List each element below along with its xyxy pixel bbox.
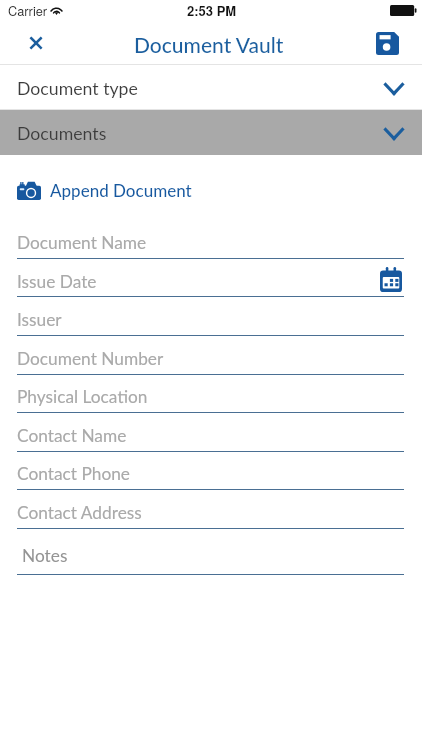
staticText: Carrier [8,1,48,19]
staticText: Documents [17,123,107,144]
button[interactable]: Close [16,22,58,64]
staticText: Append Document [50,180,192,200]
staticText: Document Number [17,348,164,369]
button[interactable] [17,299,404,336]
button[interactable] [17,338,404,375]
staticText: Document Name [17,232,147,253]
button[interactable]: Save [365,22,409,64]
staticText: Document type [17,78,138,99]
button[interactable] [17,453,404,490]
button[interactable]: Documents [0,110,422,155]
staticText: Physical Location [17,386,148,407]
button[interactable]: Document type [0,65,422,110]
staticText: Contact Name [17,425,127,446]
button[interactable] [17,415,404,452]
staticText: 2:53 PM [187,1,237,20]
staticText: Contact Address [17,502,142,523]
button[interactable] [17,376,404,413]
button[interactable] [17,222,404,259]
button[interactable]: Pick date [378,264,404,294]
staticText: Document Vault [134,32,284,57]
staticText: Issue Date [17,271,97,292]
button[interactable] [17,492,404,529]
button[interactable] [17,261,404,298]
button[interactable]: Append Document [0,171,422,209]
staticText: Contact Phone [17,463,130,484]
button[interactable] [17,532,404,574]
staticText: Notes [22,545,68,566]
staticText: Issuer [17,309,62,330]
